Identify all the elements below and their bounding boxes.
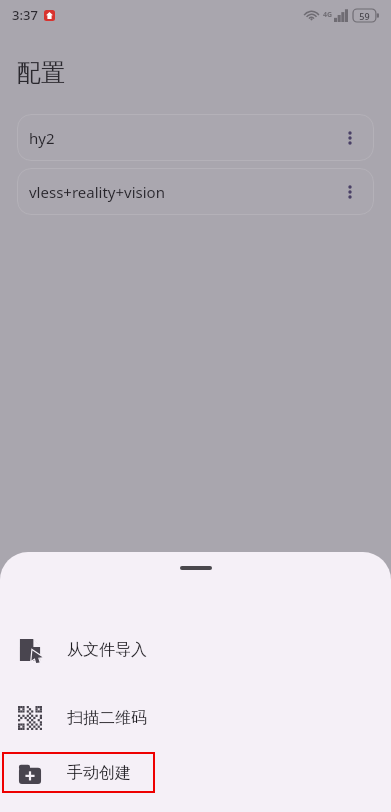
other: Import from file	[18, 638, 42, 662]
staticText: 3:37	[12, 6, 38, 24]
button[interactable]: Scan QR code	[0, 684, 391, 752]
button[interactable]: 手动创建	[2, 752, 155, 793]
staticText: 从文件导入	[67, 640, 147, 660]
staticText: hy2	[29, 128, 334, 148]
button[interactable]: More options	[334, 122, 366, 154]
staticText: 配置	[17, 58, 65, 88]
staticText: 59	[359, 10, 370, 22]
other: Scan QR code	[18, 706, 42, 730]
staticText: 扫描二维码	[67, 708, 147, 728]
button[interactable]: More options	[334, 176, 366, 208]
button[interactable]: hy2	[17, 114, 374, 161]
staticText: 手动创建	[67, 763, 131, 783]
button[interactable]: vless+reality+vision	[17, 168, 374, 215]
button[interactable]: Import from file	[0, 616, 391, 684]
staticText: 4G	[323, 10, 333, 20]
staticText: vless+reality+vision	[29, 182, 334, 202]
